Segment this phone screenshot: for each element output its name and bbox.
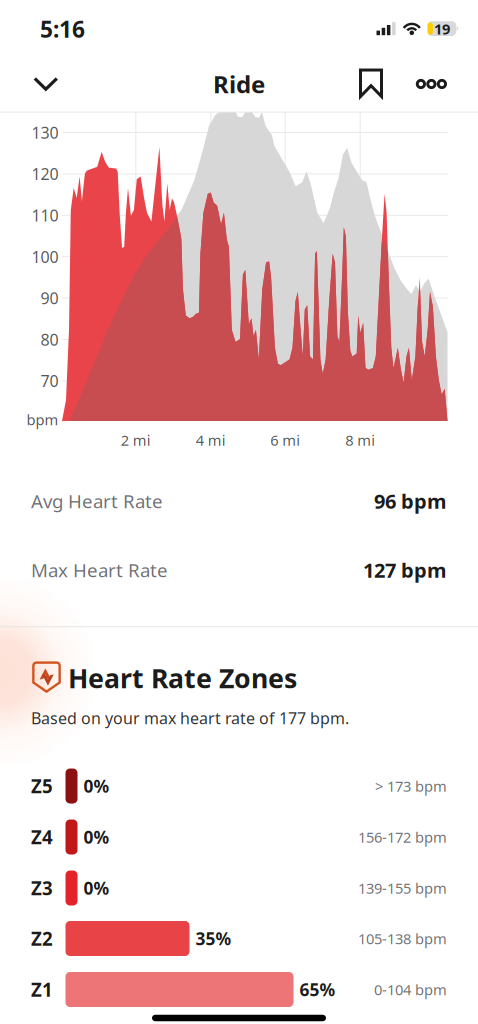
staticText: 105-138 bpm xyxy=(358,929,447,948)
staticText: Z5 xyxy=(31,774,53,798)
staticText: 90 xyxy=(40,287,58,309)
staticText: 156-172 bpm xyxy=(358,827,447,847)
staticText: Avg Heart Rate xyxy=(31,489,163,513)
staticText: 0-104 bpm xyxy=(374,980,447,999)
staticText: 19 xyxy=(434,19,450,39)
staticText: 139-155 bpm xyxy=(358,878,447,898)
staticText: Max Heart Rate xyxy=(31,558,168,582)
staticText: 0% xyxy=(83,774,109,797)
staticText: 120 xyxy=(31,163,58,184)
staticText: 4 mi xyxy=(196,430,226,450)
staticText: 65% xyxy=(299,978,335,1001)
staticText: 110 xyxy=(31,205,58,226)
staticText: bpm xyxy=(26,410,58,429)
staticText: Z3 xyxy=(31,876,53,900)
staticText: 100 xyxy=(31,246,58,267)
staticText: 0% xyxy=(83,876,109,899)
staticText: 6 mi xyxy=(270,430,300,450)
button[interactable]: More options xyxy=(416,69,448,99)
staticText: 96 bpm xyxy=(374,488,447,514)
staticText: > 173 bpm xyxy=(375,776,447,796)
staticText: Z2 xyxy=(31,926,53,951)
staticText: 80 xyxy=(40,329,58,350)
staticText: 2 mi xyxy=(121,430,151,450)
staticText: Z4 xyxy=(31,825,53,849)
staticText: Based on your max heart rate of 177 bpm. xyxy=(31,707,349,729)
button[interactable]: Collapse xyxy=(26,66,66,102)
staticText: Ride xyxy=(213,68,265,100)
staticText: 70 xyxy=(40,370,58,391)
staticText: 0% xyxy=(83,825,109,848)
staticText: Z1 xyxy=(31,977,53,1002)
staticText: 5:16 xyxy=(40,14,85,44)
button[interactable]: Save xyxy=(354,65,388,103)
staticText: 127 bpm xyxy=(363,557,447,583)
staticText: 8 mi xyxy=(345,430,375,450)
staticText: 130 xyxy=(31,122,58,143)
staticText: Heart Rate Zones xyxy=(68,660,297,696)
staticText: 35% xyxy=(195,927,231,950)
